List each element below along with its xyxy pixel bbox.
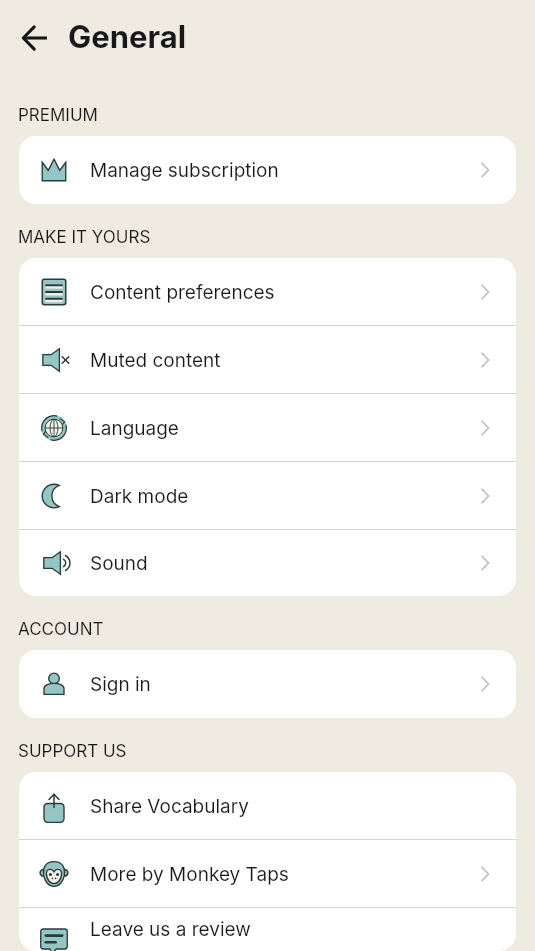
staticText: Muted content	[90, 349, 221, 372]
staticText: Sound	[90, 552, 148, 575]
staticText: PREMIUM	[18, 105, 98, 126]
button[interactable]: Leave us a review	[19, 908, 516, 951]
staticText: Content preferences	[90, 281, 275, 304]
button[interactable]: Share Vocabulary	[19, 772, 516, 840]
button[interactable]: Manage subscription	[19, 136, 516, 204]
staticText: Manage subscription	[90, 159, 279, 182]
button[interactable]: Muted content	[19, 326, 516, 394]
button[interactable]: Sign in	[19, 650, 516, 718]
button[interactable]: More by Monkey Taps	[19, 840, 516, 908]
button[interactable]: Sound	[19, 530, 516, 596]
staticText: Share Vocabulary	[90, 795, 249, 818]
staticText: Dark mode	[90, 485, 189, 508]
staticText: Language	[90, 417, 179, 440]
staticText: More by Monkey Taps	[90, 863, 289, 886]
staticText: Leave us a review	[90, 918, 251, 941]
staticText: ACCOUNT	[18, 619, 104, 640]
staticText: Sign in	[90, 673, 151, 696]
button[interactable]: Language	[19, 394, 516, 462]
staticText: MAKE IT YOURS	[18, 227, 151, 248]
button[interactable]: Back	[12, 14, 58, 60]
staticText: SUPPORT US	[18, 741, 127, 762]
button[interactable]: Dark mode	[19, 462, 516, 530]
button[interactable]: Content preferences	[19, 258, 516, 326]
staticText: General	[68, 18, 187, 56]
